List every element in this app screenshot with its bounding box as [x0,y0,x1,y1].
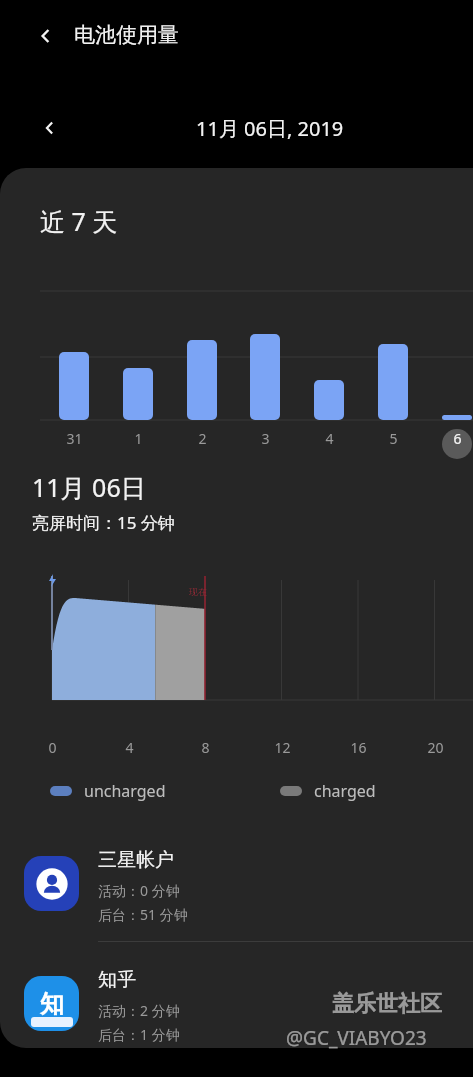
staticText: 后台：1 分钟 [98,1025,180,1044]
staticText: 11月 06日 [32,470,146,504]
staticText: 三星帐户 [98,848,174,872]
staticText: 4 [325,429,334,448]
staticText: 2 [198,429,207,448]
staticText: 20 [427,738,444,757]
button[interactable]: Battery level over time [0,568,473,733]
staticText: 活动：2 分钟 [98,1001,180,1020]
staticText: 31 [66,429,83,448]
staticText: 16 [350,738,367,757]
staticText: 5 [389,429,398,448]
button[interactable]: 三星帐户 [0,823,473,943]
staticText: 亮屏时间：15 分钟 [32,511,175,534]
staticText: 后台：51 分钟 [98,905,188,924]
staticText: 知 [40,989,64,1019]
staticText: 盖乐世社区 [332,990,442,1018]
staticText: 0 [48,738,57,757]
staticText: 1 [134,429,143,448]
staticText: @GC_VIABYO23 [286,1025,427,1051]
staticText: 电池使用量 [74,22,179,48]
button[interactable]: Weekly battery chart [0,278,473,423]
staticText: 现在 [189,586,207,597]
button[interactable]: Back [28,18,64,54]
staticText: 8 [201,738,210,757]
staticText: 3 [261,429,270,448]
staticText: 知乎 [98,968,136,992]
button[interactable]: 知 [0,943,473,1048]
staticText: 近 7 天 [40,204,118,238]
staticText: charged [314,780,376,802]
staticText: 活动：0 分钟 [98,881,180,900]
button[interactable]: 11月 06日, 2019 [150,110,390,146]
staticText: uncharged [84,780,166,802]
button[interactable]: Previous day [30,108,70,148]
staticText: 6 [453,429,462,448]
button[interactable]: uncharged [50,780,166,802]
button[interactable]: charged [280,780,376,802]
staticText: 4 [125,738,134,757]
staticText: 11月 06日, 2019 [196,115,344,142]
staticText: 12 [274,738,291,757]
